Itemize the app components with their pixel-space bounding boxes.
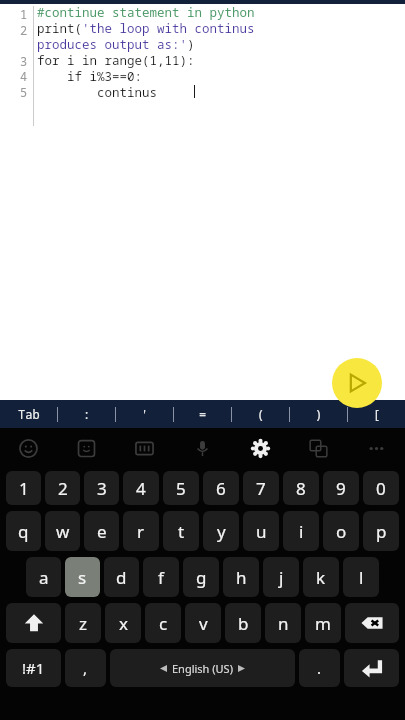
button[interactable]: v: [185, 603, 221, 643]
button[interactable]: Shift: [6, 603, 61, 643]
button[interactable]: 3: [84, 471, 119, 505]
staticText: b: [238, 612, 249, 635]
button[interactable]: ,: [65, 649, 106, 687]
button[interactable]: Enter: [344, 649, 399, 687]
button[interactable]: 9: [323, 471, 359, 505]
button[interactable]: k: [303, 557, 339, 597]
button[interactable]: ': [116, 400, 173, 428]
button[interactable]: Settings: [231, 428, 289, 468]
staticText: h: [236, 566, 247, 589]
button[interactable]: 5: [163, 471, 199, 505]
button[interactable]: :: [58, 400, 115, 428]
staticText: o: [336, 520, 347, 543]
staticText: Tab: [18, 406, 40, 422]
staticText: 9: [336, 477, 346, 500]
staticText: s: [78, 566, 87, 589]
staticText: 5: [176, 477, 186, 500]
staticText: e: [97, 520, 107, 543]
button[interactable]: u: [243, 511, 279, 551]
button[interactable]: (: [232, 400, 289, 428]
button[interactable]: f: [143, 557, 179, 597]
button[interactable]: 1: [6, 471, 41, 505]
staticText: l: [359, 566, 364, 589]
staticText: (: [257, 406, 265, 422]
button[interactable]: 8: [283, 471, 319, 505]
button[interactable]: x: [105, 603, 141, 643]
staticText: 8: [296, 477, 306, 500]
button[interactable]: z: [65, 603, 101, 643]
button[interactable]: More options: [347, 428, 405, 468]
staticText: ): [315, 406, 323, 422]
button[interactable]: 7: [243, 471, 279, 505]
staticText: n: [278, 612, 289, 635]
staticText: u: [256, 520, 267, 543]
button[interactable]: d: [104, 557, 139, 597]
button[interactable]: 2: [45, 471, 80, 505]
button[interactable]: [: [348, 400, 405, 428]
staticText: q: [18, 520, 29, 543]
staticText: 2: [58, 477, 68, 500]
button[interactable]: Emoji: [0, 428, 57, 468]
button[interactable]: English (US): [110, 649, 295, 687]
button[interactable]: !#1: [6, 649, 61, 687]
staticText: z: [79, 612, 87, 635]
button[interactable]: Voice input: [173, 428, 231, 468]
button[interactable]: GIF: [115, 428, 173, 468]
button[interactable]: t: [163, 511, 199, 551]
staticText: d: [116, 566, 127, 589]
staticText: ': [141, 406, 149, 422]
staticText: 1: [19, 477, 29, 500]
staticText: 1: [20, 6, 28, 22]
staticText: 2: [20, 22, 28, 38]
staticText: 3: [20, 53, 28, 69]
button[interactable]: a: [26, 557, 61, 597]
button[interactable]: j: [263, 557, 299, 597]
button[interactable]: Backspace: [345, 603, 399, 643]
staticText: 4: [20, 68, 28, 84]
staticText: t: [178, 520, 185, 543]
staticText: .: [317, 658, 322, 678]
button[interactable]: s: [65, 557, 100, 597]
button[interactable]: b: [225, 603, 261, 643]
button[interactable]: w: [45, 511, 80, 551]
button[interactable]: h: [223, 557, 259, 597]
button[interactable]: i: [283, 511, 319, 551]
button[interactable]: Stickers: [57, 428, 115, 468]
button[interactable]: n: [265, 603, 301, 643]
button[interactable]: p: [363, 511, 399, 551]
staticText: f: [158, 566, 164, 589]
button[interactable]: m: [305, 603, 341, 643]
button[interactable]: y: [203, 511, 239, 551]
button[interactable]: Tab: [0, 400, 57, 428]
button[interactable]: 0: [363, 471, 399, 505]
button[interactable]: .: [299, 649, 340, 687]
staticText: !#1: [22, 658, 45, 678]
button[interactable]: o: [323, 511, 359, 551]
button[interactable]: e: [84, 511, 119, 551]
staticText: a: [39, 566, 49, 589]
staticText: x: [119, 612, 128, 635]
button[interactable]: 6: [203, 471, 239, 505]
button[interactable]: 4: [123, 471, 159, 505]
button[interactable]: g: [183, 557, 219, 597]
button[interactable]: ): [290, 400, 347, 428]
staticText: i: [299, 520, 304, 543]
staticText: English (US): [172, 661, 233, 676]
staticText: w: [56, 520, 70, 543]
button[interactable]: Translate: [289, 428, 347, 468]
staticText: :: [83, 406, 91, 422]
staticText: ,: [83, 658, 88, 678]
staticText: k: [316, 566, 326, 589]
button[interactable]: Run: [332, 358, 382, 408]
staticText: j: [279, 566, 284, 589]
staticText: g: [196, 566, 207, 589]
button[interactable]: =: [174, 400, 231, 428]
staticText: 5: [20, 84, 28, 100]
button[interactable]: c: [145, 603, 181, 643]
staticText: 3: [97, 477, 107, 500]
staticText: [: [373, 406, 381, 422]
button[interactable]: q: [6, 511, 41, 551]
button[interactable]: r: [123, 511, 159, 551]
button[interactable]: l: [343, 557, 379, 597]
staticText: p: [376, 520, 387, 543]
